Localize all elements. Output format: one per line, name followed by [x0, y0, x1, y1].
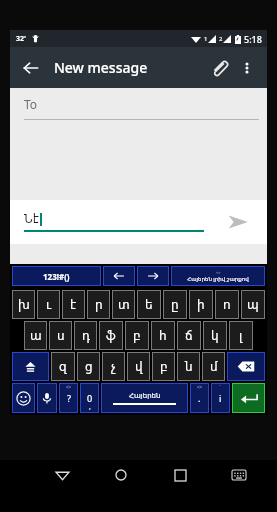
- button[interactable]: Back: [18, 55, 44, 81]
- staticText: ւ: [46, 298, 52, 312]
- button[interactable]: ո: [215, 290, 239, 319]
- button[interactable]: ը: [163, 290, 187, 319]
- staticText: դ: [82, 329, 90, 343]
- button[interactable]: ե: [137, 290, 161, 319]
- staticText: <>: [216, 270, 221, 275]
- staticText: ա: [30, 329, 42, 343]
- button[interactable]: Emoji: [12, 383, 35, 413]
- button[interactable]: չ: [102, 352, 125, 381]
- staticText: 2: [219, 35, 223, 43]
- button[interactable]: Voice input: [37, 383, 57, 413]
- button[interactable]: Right: [137, 266, 169, 286]
- staticText: բ: [133, 329, 141, 343]
- button[interactable]: Attach: [205, 54, 233, 82]
- button[interactable]: ւ: [37, 290, 60, 319]
- staticText: լ: [239, 329, 243, 343]
- staticText: ե: [145, 298, 153, 312]
- staticText: Նէ: [24, 212, 39, 226]
- button[interactable]: վ: [127, 352, 150, 381]
- staticText: ս: [57, 329, 65, 343]
- staticText: վ: [135, 360, 143, 374]
- staticText: ր: [95, 298, 103, 312]
- button[interactable]: 0: [80, 383, 99, 413]
- staticText: New message: [54, 58, 148, 77]
- button[interactable]: տ: [112, 290, 135, 319]
- button[interactable]: հ: [151, 321, 175, 350]
- button[interactable]: <>: [171, 266, 265, 286]
- button[interactable]: <>: [59, 383, 78, 413]
- button[interactable]: Shift: [12, 352, 49, 381]
- button[interactable]: Recents: [166, 461, 194, 489]
- staticText: i: [219, 392, 222, 404]
- button[interactable]: է: [62, 290, 85, 319]
- button[interactable]: ս: [49, 321, 72, 350]
- staticText: տ: [118, 298, 130, 312]
- staticText: 32': [16, 34, 26, 44]
- button[interactable]: Հայերեն: [101, 383, 188, 413]
- button[interactable]: պ: [241, 290, 265, 319]
- button[interactable]: ն: [177, 352, 200, 381]
- staticText: ի: [197, 298, 205, 312]
- button[interactable]: Switch keyboard: [225, 461, 253, 489]
- staticText: ց: [85, 360, 93, 374]
- staticText: զ: [59, 360, 67, 374]
- button[interactable]: բ: [125, 321, 149, 350]
- button[interactable]: ճ: [177, 321, 201, 350]
- staticText: Հայերեն: [129, 392, 161, 400]
- staticText: ֆ: [106, 329, 116, 343]
- staticText: ,: [89, 402, 91, 412]
- button[interactable]: դ: [74, 321, 97, 350]
- button[interactable]: <>: [190, 383, 209, 413]
- button[interactable]: Left: [103, 266, 135, 286]
- staticText: պ: [247, 298, 259, 312]
- staticText: 5:18: [244, 33, 262, 45]
- staticText: ո: [223, 298, 231, 312]
- staticText: To: [24, 96, 38, 112]
- staticText: ¨: [219, 384, 222, 390]
- staticText: է: [70, 298, 77, 312]
- button[interactable]: 123!#(): [12, 266, 101, 286]
- button[interactable]: կ: [203, 321, 227, 350]
- button[interactable]: ¨: [211, 383, 230, 413]
- button[interactable]: Send: [221, 205, 255, 239]
- staticText: .: [198, 392, 201, 404]
- staticText: խ: [18, 298, 30, 312]
- button[interactable]: լ: [229, 321, 253, 350]
- button[interactable]: զ: [51, 352, 75, 381]
- staticText: <>: [197, 384, 203, 390]
- staticText: ը: [171, 298, 179, 312]
- staticText: ?: [67, 392, 71, 404]
- staticText: 1: [204, 35, 208, 43]
- staticText: ն: [185, 360, 193, 374]
- button[interactable]: Home: [107, 461, 135, 489]
- button[interactable]: մ: [202, 352, 225, 381]
- button[interactable]: Enter: [232, 383, 265, 413]
- button[interactable]: More options: [235, 56, 259, 80]
- staticText: բ: [160, 360, 168, 374]
- staticText: Հայերեն լրիվ շարքով: [187, 275, 249, 282]
- staticText: կ: [211, 329, 219, 343]
- staticText: հ: [159, 329, 167, 343]
- button[interactable]: ֆ: [99, 321, 123, 350]
- staticText: <>: [66, 384, 72, 390]
- staticText: ճ: [185, 329, 193, 343]
- staticText: չ: [111, 360, 116, 374]
- button[interactable]: ց: [77, 352, 100, 381]
- button[interactable]: բ: [152, 352, 175, 381]
- button[interactable]: խ: [12, 290, 35, 319]
- button[interactable]: ի: [189, 290, 213, 319]
- button[interactable]: ր: [87, 290, 110, 319]
- staticText: 123!#(): [43, 271, 70, 282]
- button[interactable]: ա: [24, 321, 47, 350]
- button[interactable]: Back: [48, 461, 76, 489]
- staticText: 0: [87, 392, 93, 404]
- button[interactable]: Backspace: [227, 352, 265, 381]
- staticText: մ: [210, 360, 218, 374]
